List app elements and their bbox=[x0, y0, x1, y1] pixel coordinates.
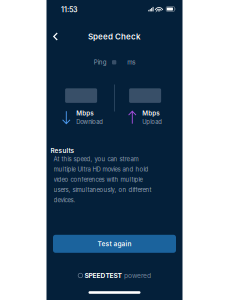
staticText: powered bbox=[124, 271, 151, 280]
button[interactable]: Test again bbox=[53, 235, 176, 253]
staticText: Mbps bbox=[76, 109, 93, 117]
button[interactable]: Back bbox=[47, 27, 63, 45]
staticText: SPEEDTEST bbox=[84, 271, 121, 280]
staticText: Download bbox=[76, 118, 103, 125]
staticText: At this speed, you can stream multiple U… bbox=[53, 155, 151, 204]
staticText: Mbps bbox=[142, 109, 159, 117]
staticText: Speed Check bbox=[88, 32, 141, 41]
staticText: Ping bbox=[94, 59, 107, 66]
staticText: 11:53 bbox=[61, 5, 77, 14]
staticText: ms bbox=[127, 59, 135, 66]
staticText: Test again bbox=[97, 240, 131, 248]
staticText: Results bbox=[50, 147, 74, 154]
staticText: Upload bbox=[142, 118, 162, 125]
